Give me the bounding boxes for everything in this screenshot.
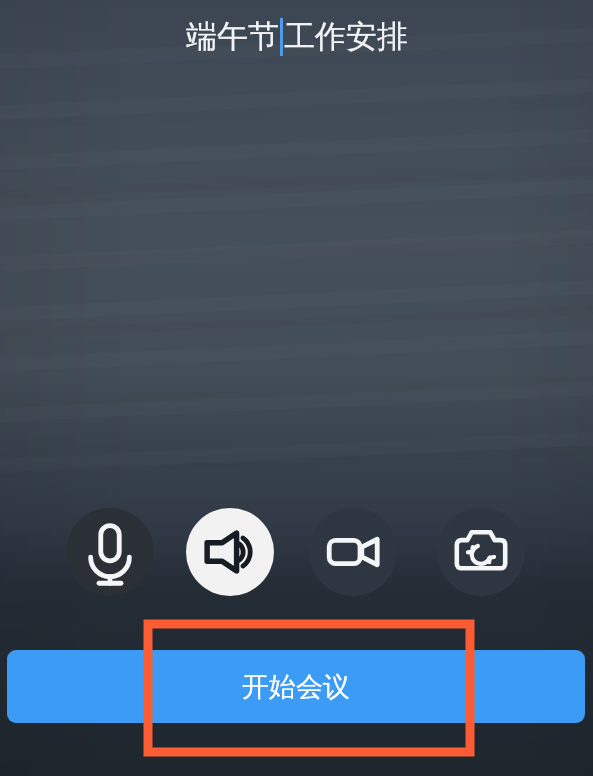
button[interactable]: Mute microphone: [66, 508, 154, 596]
staticText: 工作安排: [284, 17, 408, 56]
button[interactable]: Speaker: [186, 508, 274, 596]
staticText: 开始会议: [242, 670, 350, 704]
button[interactable]: Switch camera: [437, 508, 525, 596]
button[interactable]: Camera: [309, 508, 397, 596]
staticText: 端午节: [186, 17, 279, 56]
button[interactable]: 开始会议: [7, 650, 585, 723]
